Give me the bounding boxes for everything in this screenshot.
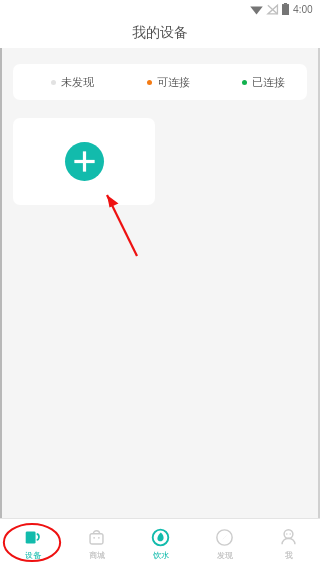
button[interactable]: 我 — [256, 519, 320, 569]
button[interactable]: Add device — [13, 118, 155, 205]
button[interactable]: 饮水 — [128, 519, 192, 569]
button[interactable]: 商城 — [64, 519, 128, 569]
staticText: 发现 — [217, 550, 233, 560]
staticText: 已连接 — [252, 75, 285, 89]
staticText: 未发现 — [61, 75, 94, 89]
staticText: 饮水 — [153, 550, 169, 560]
staticText: 我 — [285, 550, 293, 560]
staticText: 商城 — [89, 550, 105, 560]
button[interactable]: 未发现 — [13, 64, 307, 100]
button[interactable]: 设备 — [0, 519, 64, 569]
staticText: 我的设备 — [132, 24, 188, 42]
button[interactable]: 发现 — [192, 519, 256, 569]
staticText: 4:00 — [293, 2, 313, 16]
staticText: 设备 — [25, 550, 41, 560]
staticText: 可连接 — [157, 75, 190, 89]
